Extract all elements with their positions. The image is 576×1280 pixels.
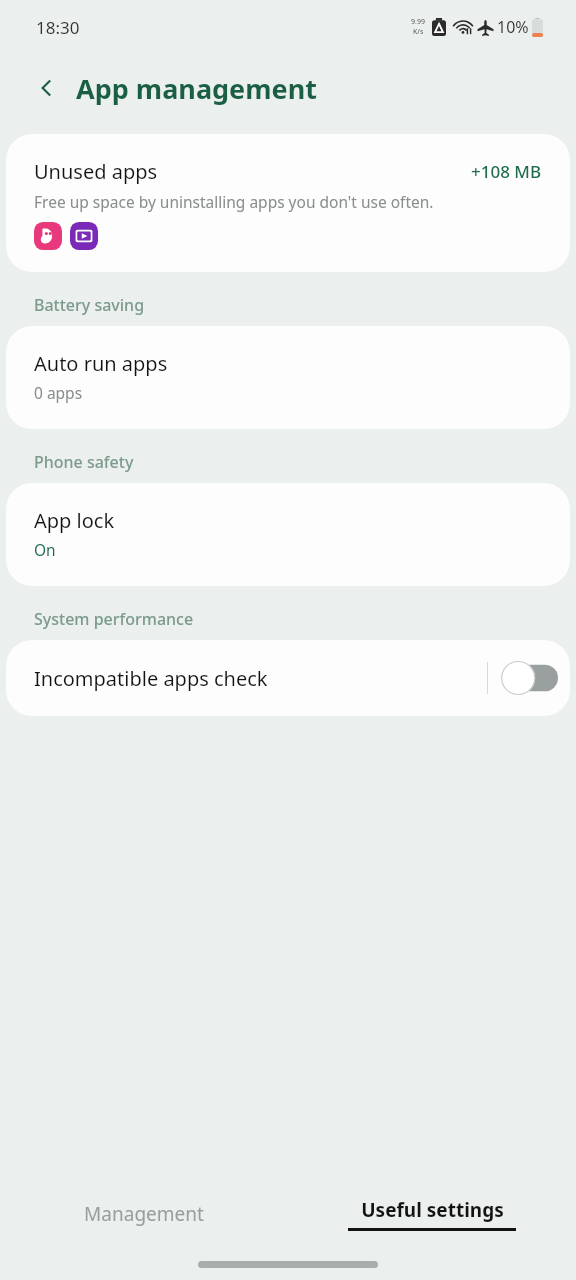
- staticText: On: [34, 539, 56, 560]
- button[interactable]: Auto run apps: [6, 326, 570, 429]
- staticText: 0 apps: [34, 382, 83, 403]
- button[interactable]: Useful settings: [288, 1180, 576, 1248]
- staticText: +108 MB: [471, 160, 542, 183]
- button[interactable]: Back: [30, 71, 64, 105]
- staticText: Useful settings: [361, 1197, 504, 1223]
- staticText: K/s: [413, 27, 424, 37]
- staticText: 18:30: [36, 16, 80, 39]
- staticText: App lock: [34, 507, 115, 534]
- staticText: Unused apps: [34, 158, 471, 185]
- staticText: Incompatible apps check: [34, 665, 268, 692]
- staticText: Auto run apps: [34, 350, 168, 377]
- staticText: App management: [76, 70, 317, 107]
- button[interactable]: Management: [0, 1180, 288, 1248]
- staticText: 9.99: [411, 17, 425, 27]
- staticText: Free up space by uninstalling apps you d…: [34, 191, 434, 212]
- staticText: System performance: [34, 608, 194, 630]
- button[interactable]: App lock: [6, 483, 570, 586]
- staticText: 10%: [497, 16, 529, 38]
- staticText: Phone safety: [34, 451, 134, 473]
- staticText: Management: [84, 1201, 204, 1227]
- button[interactable]: Incompatible apps check: [6, 640, 487, 716]
- staticText: Battery saving: [34, 294, 145, 316]
- button[interactable]: Incompatible apps check toggle, off: [488, 640, 570, 716]
- button[interactable]: Unused apps: [6, 134, 570, 272]
